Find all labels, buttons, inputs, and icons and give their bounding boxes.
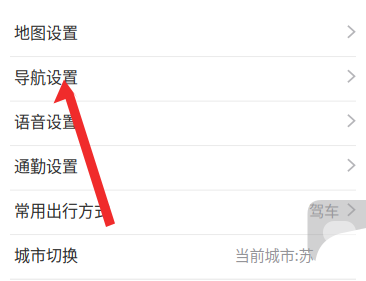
- staticText: 地图设置: [14, 20, 78, 43]
- button[interactable]: 地图设置: [0, 13, 366, 57]
- button[interactable]: 语音设置: [0, 102, 366, 146]
- staticText: 常用出行方式: [14, 198, 110, 221]
- staticText: 当前城市:苏: [234, 243, 313, 265]
- button[interactable]: 通勤设置: [0, 146, 366, 191]
- staticText: 城市切换: [14, 243, 78, 266]
- staticText: 语音设置: [14, 109, 78, 132]
- button[interactable]: 导航设置: [0, 57, 366, 102]
- staticText: 通勤设置: [14, 154, 78, 177]
- staticText: 驾车: [309, 199, 339, 221]
- button[interactable]: 常用出行方式: [0, 191, 366, 235]
- button[interactable]: 城市切换: [0, 235, 366, 280]
- staticText: 导航设置: [14, 65, 78, 88]
